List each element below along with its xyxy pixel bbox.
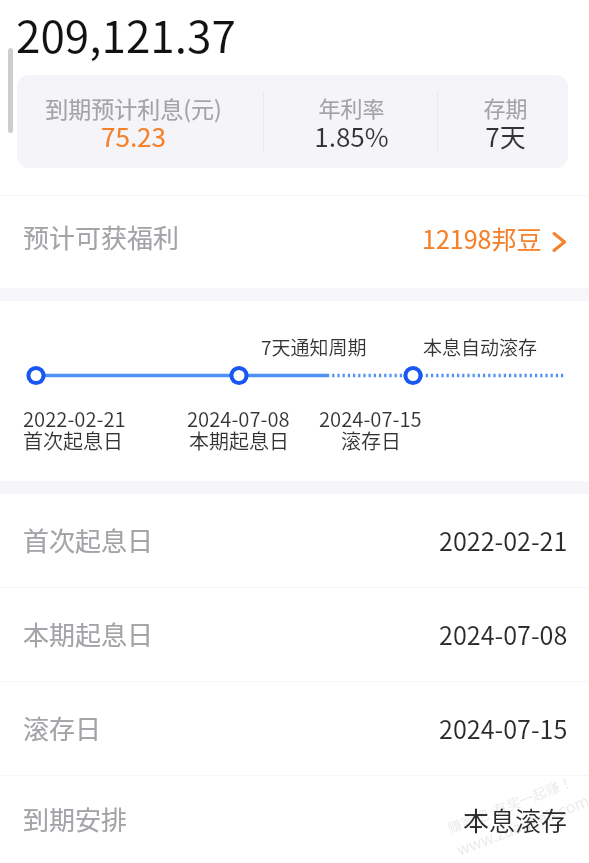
staticText: 2022-02-21 <box>439 522 568 558</box>
staticText: 2022-02-21 <box>23 404 126 433</box>
staticText: 预计可获福利 <box>23 218 180 256</box>
staticText: 2024-07-15 <box>439 710 568 746</box>
staticText: 1.85% <box>314 117 389 155</box>
staticText: 滚存日 <box>23 709 102 747</box>
staticText: 首次起息日 <box>23 426 123 455</box>
button[interactable]: 本期起息日 <box>0 588 589 681</box>
staticText: 209,121.37 <box>16 2 236 66</box>
staticText: 7天通知周期 <box>261 333 367 361</box>
button[interactable]: 到期安排 <box>0 776 589 863</box>
other: 查看详情 <box>553 232 566 252</box>
staticText: 2024-07-08 <box>439 616 568 652</box>
staticText: 75.23 <box>101 117 166 155</box>
staticText: 2024-07-15 <box>319 404 422 433</box>
staticText: 到期安排 <box>23 800 128 838</box>
staticText: www.zuanke8.com <box>452 788 589 860</box>
staticText: 2024-07-08 <box>187 404 290 433</box>
staticText: 赚客吧 有奖一起赚！ <box>445 771 576 837</box>
staticText: 7天 <box>485 117 526 155</box>
staticText: 年利率 <box>318 91 385 123</box>
staticText: 到期预计利息(元) <box>45 91 222 124</box>
button[interactable]: 首次起息日 <box>0 494 589 587</box>
staticText: 存期 <box>483 91 528 123</box>
staticText: 滚存日 <box>341 426 401 455</box>
staticText: 本期起息日 <box>189 426 289 455</box>
staticText: 本期起息日 <box>23 615 154 653</box>
staticText: 12198邦豆 <box>422 220 542 256</box>
button[interactable]: 滚存日 <box>0 682 589 775</box>
staticText: 首次起息日 <box>23 521 154 559</box>
button[interactable]: 预计可获福利 <box>0 196 589 288</box>
staticText: 本息滚存 <box>463 801 568 839</box>
staticText: 本息自动滚存 <box>423 333 538 361</box>
